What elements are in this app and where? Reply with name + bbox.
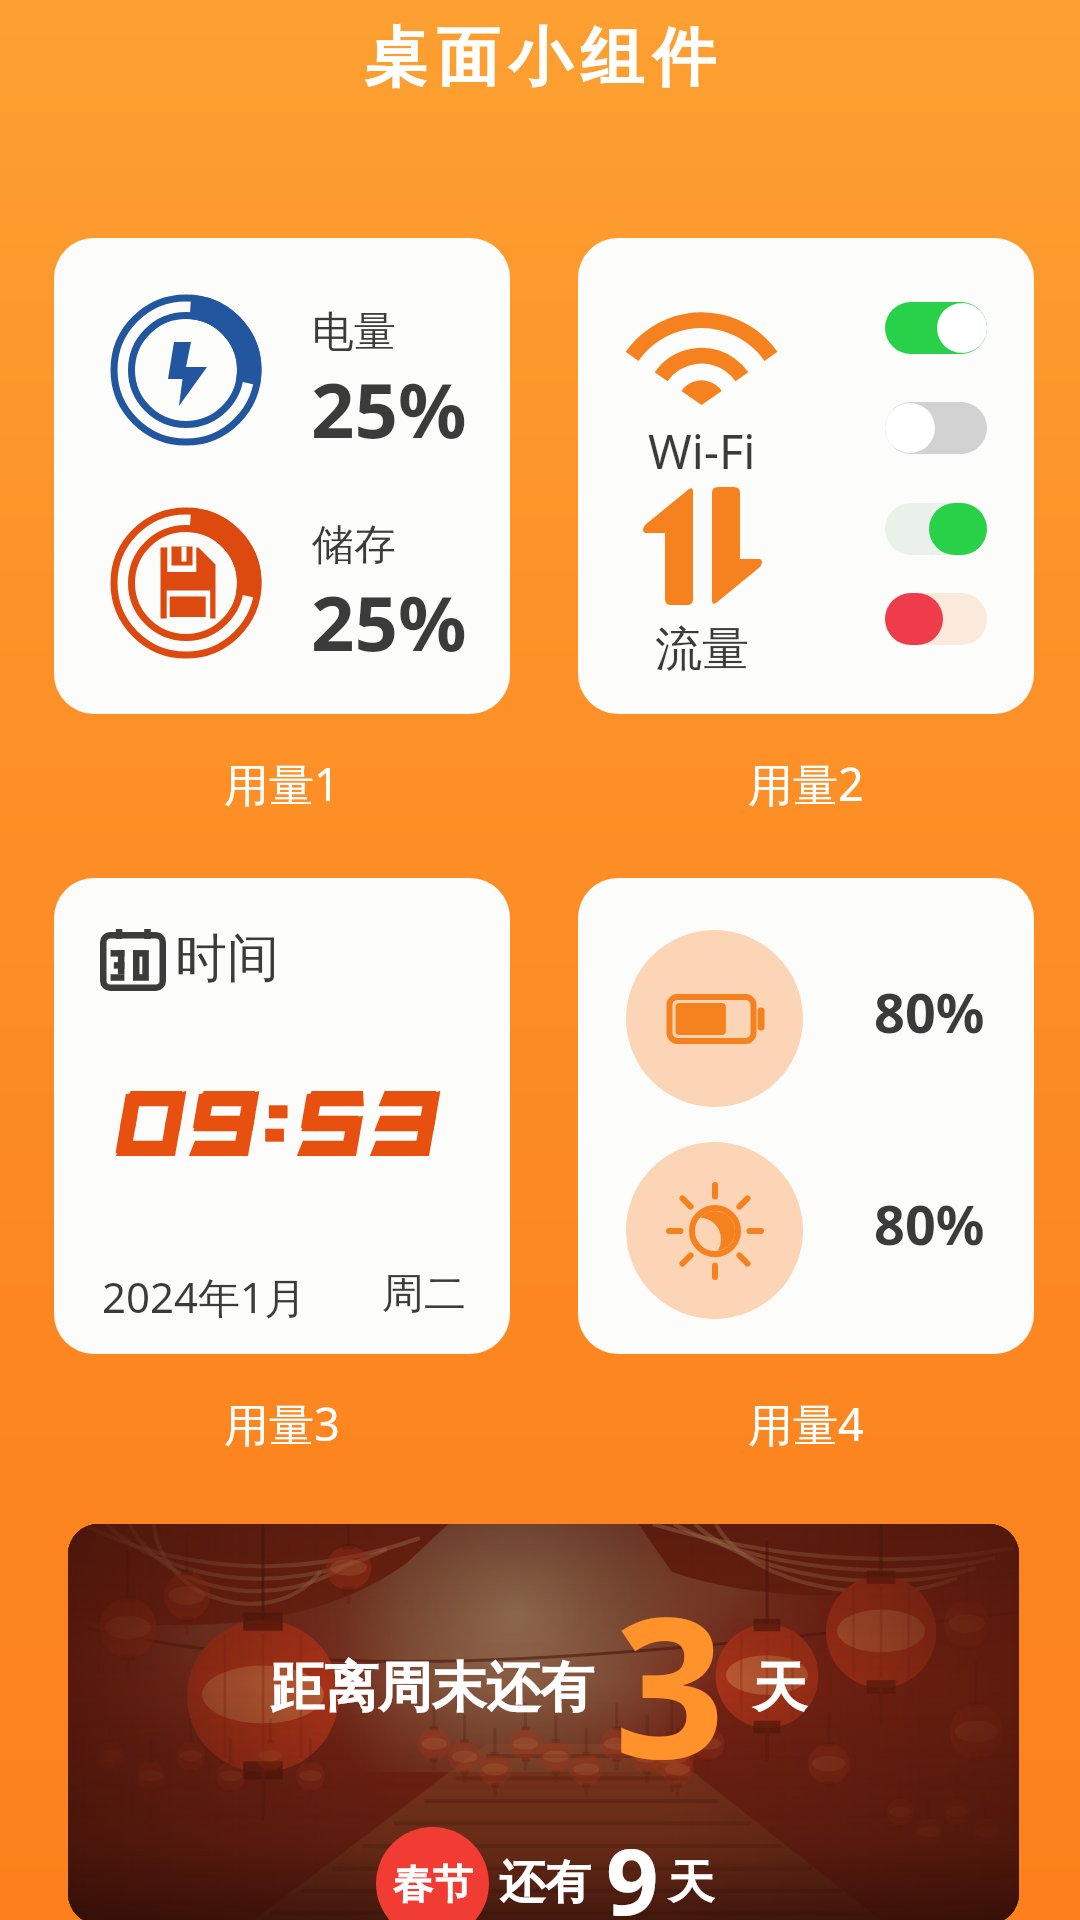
button[interactable]: 春节倒计时横幅 bbox=[68, 1524, 1019, 1920]
button[interactable]: 电量 bbox=[54, 238, 510, 814]
staticText: 25% bbox=[311, 570, 467, 674]
button[interactable]: Wi-Fi bbox=[578, 238, 1034, 814]
staticText: 天 bbox=[753, 1654, 807, 1722]
staticText: 3 bbox=[614, 1551, 725, 1815]
staticText: 9 bbox=[606, 1817, 659, 1920]
button[interactable]: Wi-Fi 开关, 已开启 bbox=[885, 302, 987, 354]
button[interactable]: 蓝牙开关, 已关闭 bbox=[885, 402, 987, 454]
button[interactable]: 移动数据开关, 已开启 bbox=[885, 503, 987, 555]
staticText: 电量 bbox=[312, 306, 396, 359]
staticText: 春节 bbox=[393, 1859, 473, 1909]
staticText: 25% bbox=[311, 357, 467, 461]
staticText: 用量3 bbox=[224, 1393, 340, 1454]
staticText: 用量2 bbox=[748, 753, 864, 814]
staticText: 还有 bbox=[499, 1854, 591, 1912]
staticText: 流量 bbox=[655, 620, 749, 679]
staticText: 时间 bbox=[175, 926, 279, 992]
button[interactable]: 时间 bbox=[54, 878, 510, 1454]
staticText: 80% bbox=[874, 975, 985, 1049]
staticText: 2024年1月 bbox=[102, 1268, 307, 1325]
staticText: 80% bbox=[874, 1187, 985, 1261]
staticText: 距离周末还有 bbox=[270, 1654, 594, 1722]
staticText: Wi-Fi bbox=[648, 419, 756, 483]
staticText: 周二 bbox=[382, 1268, 466, 1321]
staticText: 储存 bbox=[312, 519, 396, 572]
staticText: 用量4 bbox=[748, 1393, 864, 1454]
staticText: 桌面小组件 bbox=[360, 18, 720, 97]
button[interactable]: 勿扰模式开关, 已关闭 bbox=[885, 593, 987, 645]
button[interactable]: 80% bbox=[578, 878, 1034, 1454]
staticText: 天 bbox=[668, 1854, 714, 1912]
staticText: 用量1 bbox=[224, 753, 340, 814]
